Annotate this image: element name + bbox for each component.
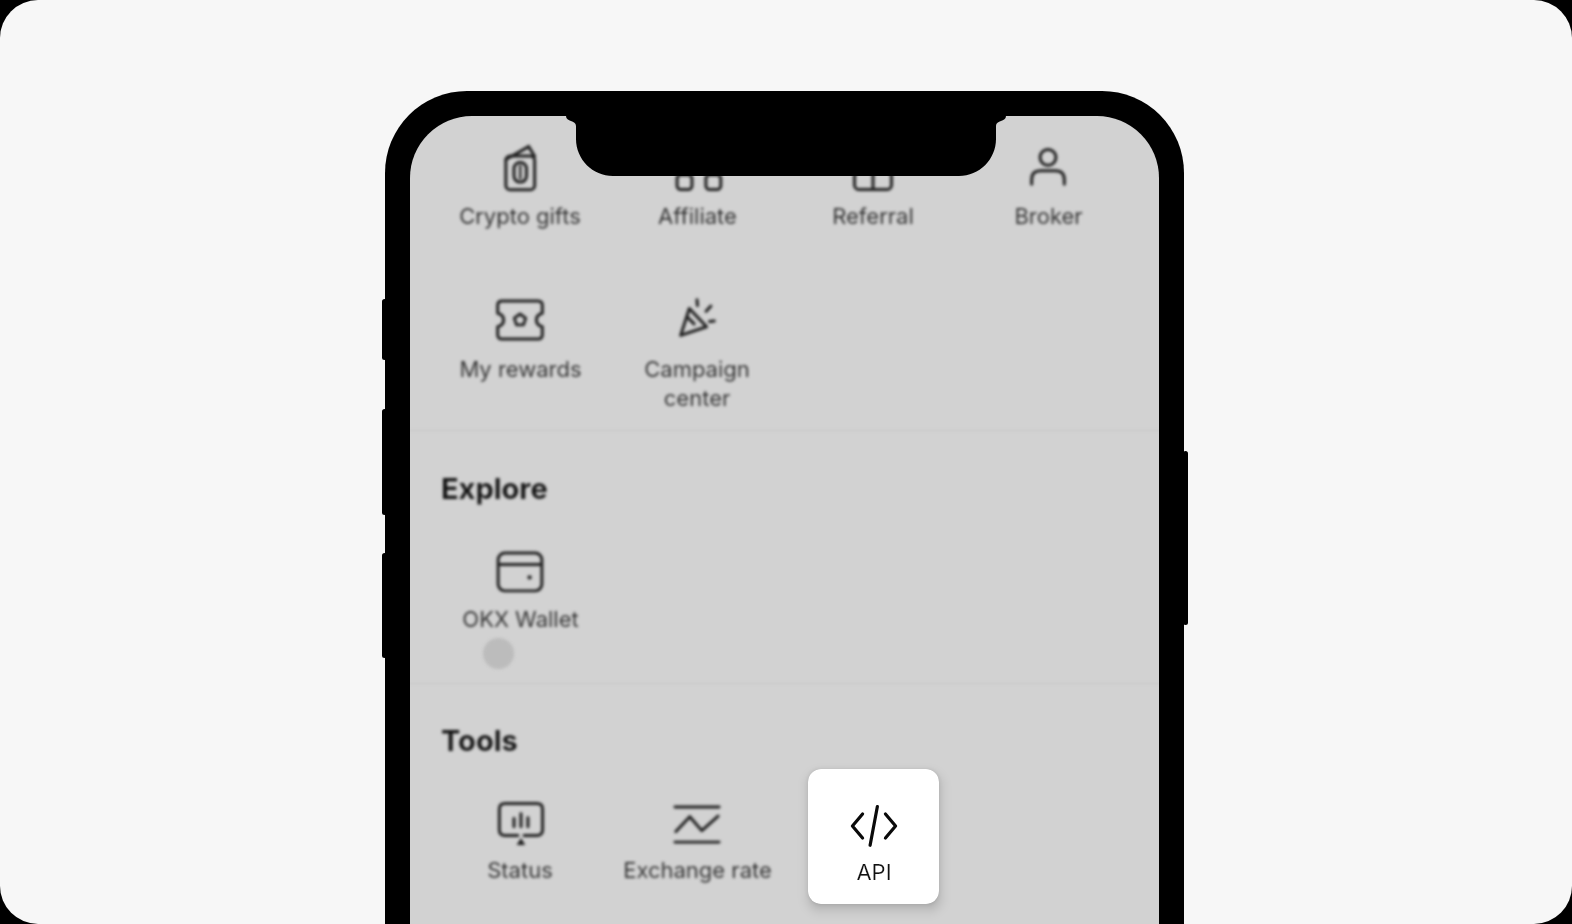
staticText: API bbox=[856, 859, 892, 886]
button[interactable]: Affiliate bbox=[609, 143, 785, 230]
staticText: Referral bbox=[832, 203, 914, 230]
button[interactable]: My rewards bbox=[432, 296, 608, 383]
staticText: Campaign center bbox=[644, 356, 750, 412]
staticText: Crypto gifts bbox=[459, 203, 581, 230]
staticText: OKX Wallet bbox=[462, 606, 579, 633]
staticText: My rewards bbox=[459, 356, 582, 383]
button[interactable]: Status bbox=[432, 797, 608, 884]
button[interactable]: Crypto gifts bbox=[432, 143, 608, 230]
staticText: Status bbox=[487, 857, 553, 884]
button[interactable]: API bbox=[808, 769, 939, 904]
button[interactable]: OKX Wallet bbox=[432, 546, 608, 633]
staticText: Tools bbox=[441, 723, 518, 758]
staticText: Explore bbox=[441, 471, 548, 506]
staticText: Exchange rate bbox=[623, 857, 772, 884]
button[interactable]: Exchange rate bbox=[609, 797, 785, 884]
button[interactable]: Campaign center bbox=[609, 296, 785, 412]
button[interactable]: Referral bbox=[785, 143, 961, 230]
staticText: Broker bbox=[1014, 203, 1083, 230]
button[interactable]: OKX Wallet avatar bbox=[483, 638, 514, 669]
button[interactable]: Broker bbox=[960, 143, 1136, 230]
staticText: Affiliate bbox=[658, 203, 737, 230]
